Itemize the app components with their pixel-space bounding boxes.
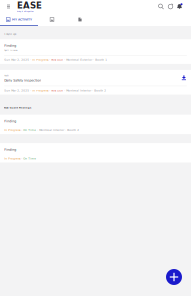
button[interactable]: Audit [0,70,191,95]
staticText: Finding [4,119,16,123]
staticText: In Progress [32,89,48,92]
button[interactable]: Notifications [175,0,184,13]
button[interactable]: MY ACTIVITY [0,13,38,26]
staticText: · Montreal Exterior · Booth 1 [63,58,107,61]
staticText: bring it all together [17,10,34,12]
button[interactable]: Search [156,0,166,13]
staticText: · Montreal Interior · Booth 2 [63,89,106,92]
staticText: Daily Safety Inspection [4,78,41,82]
staticText: Finding [4,44,16,47]
button[interactable]: Finding [0,39,191,64]
button[interactable]: Audits [38,13,66,26]
button[interactable]: Documents [66,13,94,26]
staticText: Finding [4,148,16,151]
staticText: Non-Audit Findings [4,107,31,109]
staticText: · Montreal Interior · Booth 2 [36,129,79,132]
staticText: In Progress [4,129,20,132]
staticText: Sun Mar 2, 2025 · [4,58,32,61]
staticText: Past Due [51,89,63,92]
button[interactable]: Refresh [166,0,175,13]
staticText: Audit [4,74,9,77]
staticText: · [20,157,23,160]
button[interactable]: Finding [0,143,191,162]
staticText: · [48,58,51,61]
button[interactable]: Finding [0,115,191,134]
staticText: On Time [23,129,36,132]
staticText: 1 day(s) ago [4,33,16,35]
button[interactable]: Add [166,269,182,285]
staticText: In Progress [4,157,20,160]
staticText: EASE [17,0,42,10]
staticText: · [20,129,23,132]
button[interactable]: Menu [0,0,17,13]
staticText: On Time [23,157,36,160]
staticText: Sun Mar 2, 2025 · [4,89,32,92]
staticText: · [48,89,51,92]
staticText: MY ACTIVITY [12,18,32,21]
staticText: In Progress [32,58,48,61]
staticText: Past Due [51,58,63,61]
staticText: Spill in area [4,49,17,51]
